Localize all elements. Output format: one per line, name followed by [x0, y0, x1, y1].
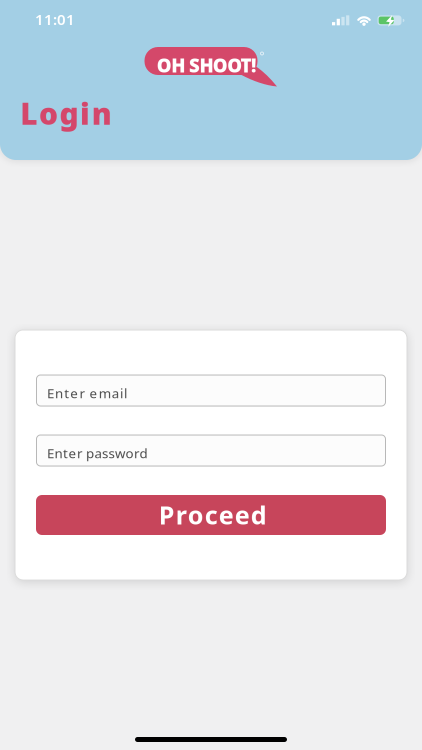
- staticText: OH SHOOT!: [157, 52, 260, 78]
- staticText: Enter password: [47, 444, 151, 462]
- button[interactable]: Proceed: [36, 495, 386, 535]
- staticText: Login: [20, 93, 121, 134]
- staticText: Proceed: [159, 498, 275, 532]
- button[interactable]: Enter email: [36, 375, 385, 406]
- staticText: 11:01: [35, 9, 75, 29]
- staticText: Enter email: [47, 384, 131, 402]
- button[interactable]: Enter password: [36, 435, 385, 466]
